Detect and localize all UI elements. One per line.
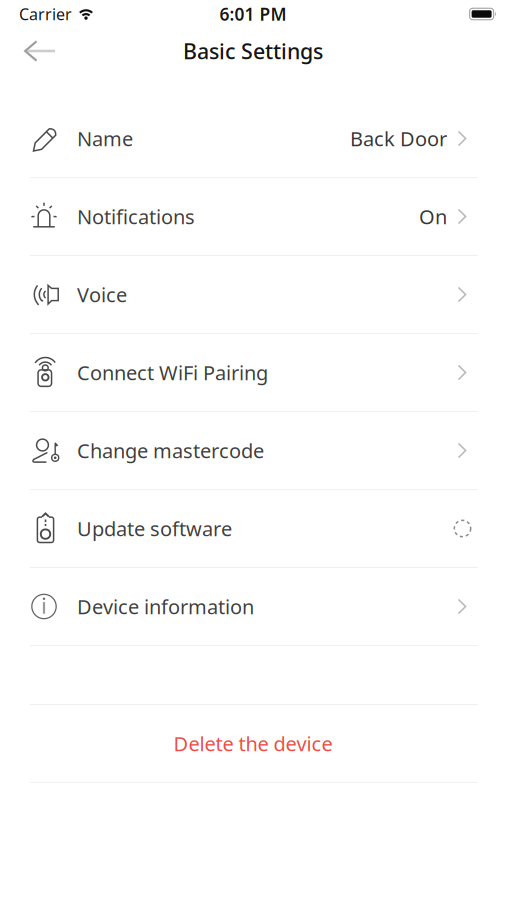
button[interactable]: Back [0,28,55,73]
staticText: Notifications [77,203,195,230]
button[interactable]: Voice [0,256,506,334]
staticText: Update software [77,515,232,542]
staticText: Device information [77,593,254,620]
staticText: Connect WiFi Pairing [77,359,268,386]
button[interactable]: Device information [0,568,506,646]
button[interactable]: Notifications [0,178,506,256]
staticText: 6:01 PM [219,2,286,25]
button[interactable]: Delete the device [0,705,506,782]
button[interactable]: Change mastercode [0,412,506,490]
button[interactable]: Update software [0,490,506,568]
staticText: Name [77,125,133,152]
staticText: Delete the device [173,730,332,757]
button[interactable]: Connect WiFi Pairing [0,334,506,412]
button[interactable]: Name [0,100,506,178]
staticText: Change mastercode [77,437,264,464]
staticText: Basic Settings [183,37,323,65]
staticText: Back Door [350,125,447,152]
staticText: On [419,203,447,230]
staticText: Voice [77,281,127,308]
staticText: Carrier [19,3,72,25]
